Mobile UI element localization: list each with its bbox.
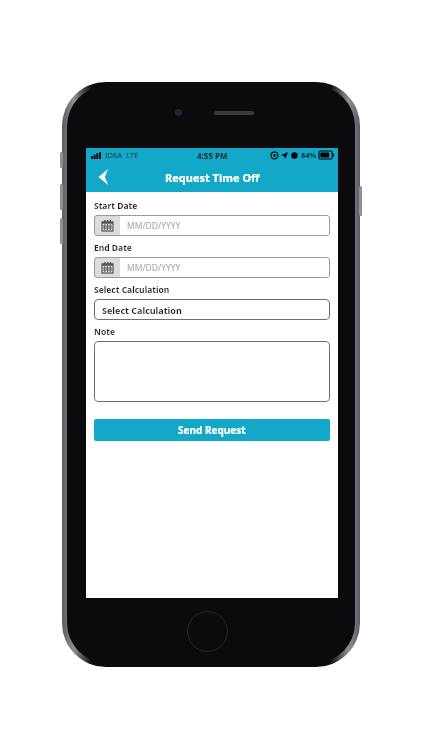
- staticText: Start Date: [94, 200, 138, 212]
- staticText: Request Time Off: [165, 170, 260, 185]
- staticText: LTE: [126, 150, 139, 160]
- staticText: MM/DD/YYYY: [127, 262, 181, 274]
- staticText: Select Calculation: [94, 284, 170, 296]
- button[interactable]: Select Calculation: [94, 299, 330, 320]
- staticText: IDEA: [105, 150, 122, 160]
- staticText: MM/DD/YYYY: [127, 220, 181, 232]
- button[interactable]: [94, 341, 330, 402]
- staticText: 4:55 PM: [197, 150, 228, 161]
- button[interactable]: MM/DD/YYYY: [94, 257, 330, 278]
- button[interactable]: Send Request: [94, 419, 330, 441]
- staticText: Note: [94, 326, 115, 338]
- staticText: 84%: [301, 150, 317, 160]
- staticText: End Date: [94, 242, 132, 254]
- button[interactable]: Back: [86, 162, 120, 192]
- staticText: Send Request: [178, 423, 246, 437]
- button[interactable]: MM/DD/YYYY: [94, 215, 330, 236]
- staticText: Select Calculation: [102, 304, 182, 316]
